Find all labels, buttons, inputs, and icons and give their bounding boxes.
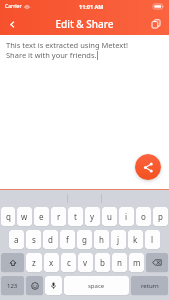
staticText: a — [14, 234, 19, 245]
staticText: Share it with your friends. — [6, 50, 97, 60]
button[interactable]: g — [77, 230, 92, 249]
staticText: n — [117, 257, 122, 268]
staticText: o — [141, 211, 146, 222]
staticText: t — [74, 211, 77, 222]
staticText: g — [82, 234, 87, 245]
button[interactable]: w — [17, 207, 32, 226]
button[interactable]: k — [128, 230, 143, 249]
staticText: q — [6, 211, 11, 222]
button[interactable]: space — [64, 276, 129, 295]
button[interactable]: l — [145, 230, 160, 249]
button[interactable]: z — [26, 253, 42, 272]
button[interactable]: v — [78, 253, 93, 272]
button[interactable]: return — [131, 276, 168, 295]
button[interactable]: f — [60, 230, 75, 249]
staticText: x — [49, 257, 54, 268]
staticText: u — [107, 211, 112, 222]
staticText: j — [117, 234, 120, 245]
button[interactable]: Copy — [146, 14, 166, 34]
staticText: h — [99, 234, 104, 245]
button[interactable]: n — [112, 253, 127, 272]
button[interactable]: Shift — [1, 253, 24, 272]
button[interactable]: q — [1, 207, 15, 226]
button[interactable]: j — [111, 230, 126, 249]
button[interactable]: p — [153, 207, 168, 226]
button[interactable]: b — [95, 253, 110, 272]
staticText: return — [141, 282, 159, 290]
button[interactable]: Back — [2, 14, 22, 34]
staticText: v — [83, 257, 88, 268]
button[interactable]: o — [136, 207, 151, 226]
button[interactable]: e — [34, 207, 49, 226]
staticText: l — [151, 234, 154, 245]
staticText: 123 — [7, 282, 18, 290]
staticText: space — [88, 282, 105, 290]
button[interactable]: Backspace — [146, 253, 168, 272]
button[interactable]: Share — [135, 154, 161, 180]
staticText: w — [21, 211, 28, 222]
staticText: z — [32, 257, 36, 268]
staticText: f — [66, 234, 69, 245]
staticText: Edit & Share — [55, 17, 114, 31]
staticText: p — [158, 211, 163, 222]
button[interactable]: t — [68, 207, 83, 226]
staticText: d — [48, 234, 53, 245]
button[interactable]: u — [102, 207, 117, 226]
staticText: b — [100, 257, 105, 268]
button[interactable]: a — [9, 230, 24, 249]
button[interactable]: c — [61, 253, 76, 272]
staticText: m — [133, 257, 141, 268]
staticText: e — [39, 211, 44, 222]
button[interactable]: d — [43, 230, 58, 249]
staticText: Carrier — [5, 3, 22, 10]
button[interactable]: s — [26, 230, 41, 249]
button[interactable]: h — [94, 230, 109, 249]
button[interactable]: Emoji — [26, 276, 43, 295]
button[interactable]: x — [44, 253, 59, 272]
staticText: 11:01 AM — [79, 3, 104, 10]
staticText: c — [67, 257, 71, 268]
button[interactable]: i — [119, 207, 134, 226]
button[interactable]: y — [85, 207, 100, 226]
staticText: s — [32, 234, 36, 245]
button[interactable]: Dictate — [45, 276, 62, 295]
staticText: This text is extracted using Metext! — [6, 40, 129, 50]
staticText: r — [57, 211, 61, 222]
staticText: k — [133, 234, 138, 245]
staticText: y — [90, 211, 95, 222]
button[interactable]: m — [129, 253, 144, 272]
staticText: i — [125, 211, 128, 222]
button[interactable]: 123 — [1, 276, 24, 295]
button[interactable]: r — [51, 207, 66, 226]
